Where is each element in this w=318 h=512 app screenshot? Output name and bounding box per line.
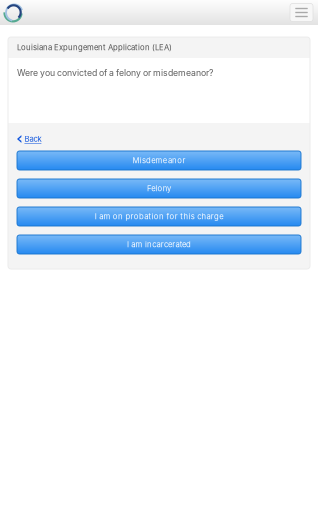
- staticText: Louisiana Expungement Application (LEA): [17, 43, 172, 52]
- button[interactable]: Misdemeanor: [17, 151, 301, 170]
- staticText: I am incarcerated: [127, 240, 191, 249]
- staticText: Back: [24, 134, 41, 144]
- button[interactable]: I am on probation for this charge: [17, 207, 301, 226]
- button[interactable]: Home: [0, 0, 24, 25]
- staticText: I am on probation for this charge: [95, 212, 223, 221]
- staticText: Were you convicted of a felony or misdem…: [17, 67, 213, 78]
- staticText: Misdemeanor: [132, 156, 185, 165]
- button[interactable]: Felony: [17, 179, 301, 198]
- staticText: Felony: [147, 184, 171, 193]
- button[interactable]: Back: [8, 129, 310, 149]
- button[interactable]: I am incarcerated: [17, 235, 301, 254]
- button[interactable]: Menu: [290, 3, 318, 21]
